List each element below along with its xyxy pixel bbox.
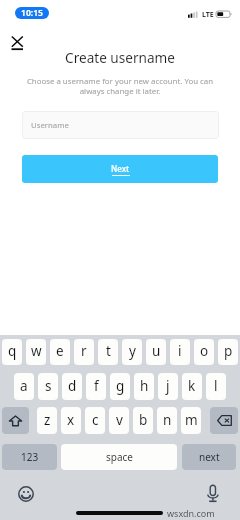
button[interactable]: a [14, 373, 34, 400]
staticText: b [139, 411, 148, 429]
button[interactable]: Dictation [207, 484, 219, 503]
staticText: n [163, 411, 172, 429]
button[interactable]: h [134, 373, 154, 400]
staticText: 123 [21, 450, 39, 464]
staticText: Choose a username for your new account. … [0, 76, 240, 96]
button[interactable]: Username [22, 111, 219, 139]
button[interactable]: t [98, 339, 118, 365]
staticText: i [178, 342, 182, 360]
staticText: o [200, 342, 209, 360]
staticText: u [152, 342, 161, 360]
staticText: k [188, 377, 196, 395]
button[interactable]: j [158, 373, 178, 400]
button[interactable]: next [182, 444, 236, 470]
button[interactable]: Emoji keyboard [18, 486, 34, 502]
staticText: e [56, 342, 64, 360]
button[interactable]: s [38, 373, 58, 400]
staticText: h [140, 377, 149, 395]
button[interactable]: w [26, 339, 46, 365]
button[interactable]: g [110, 373, 130, 400]
button[interactable]: k [182, 373, 202, 400]
button[interactable]: u [146, 339, 166, 365]
button[interactable]: Close [6, 32, 28, 52]
staticText: t [106, 342, 111, 360]
button[interactable]: i [170, 339, 190, 365]
staticText: r [81, 342, 87, 360]
button[interactable]: c [85, 407, 105, 434]
staticText: next [199, 450, 220, 464]
button[interactable]: v [109, 407, 129, 434]
button[interactable]: m [181, 407, 201, 434]
button[interactable]: Backspace [210, 407, 238, 434]
staticText: p [224, 342, 233, 360]
staticText: q [8, 342, 17, 360]
button[interactable]: d [62, 373, 82, 400]
button[interactable]: b [133, 407, 153, 434]
staticText: w [31, 342, 42, 360]
staticText: a [20, 377, 28, 395]
staticText: s [45, 377, 52, 395]
button[interactable]: q [2, 339, 22, 365]
button[interactable]: 123 [2, 444, 57, 470]
button[interactable]: f [86, 373, 106, 400]
staticText: x [67, 411, 75, 429]
staticText: d [68, 377, 77, 395]
button[interactable]: Shift [2, 407, 29, 434]
staticText: m [185, 411, 198, 429]
staticText: g [116, 377, 125, 395]
button[interactable]: o [194, 339, 214, 365]
staticText: f [94, 377, 99, 395]
staticText: Username [31, 120, 69, 131]
staticText: y [129, 342, 136, 360]
button[interactable]: Next [22, 155, 218, 183]
staticText: wsxdn.com [167, 507, 215, 519]
button[interactable]: l [206, 373, 226, 400]
button[interactable]: n [157, 407, 177, 434]
staticText: Next [111, 163, 130, 174]
button[interactable]: r [74, 339, 94, 365]
button[interactable]: space [61, 444, 177, 470]
staticText: 10:15 [21, 7, 44, 19]
staticText: v [116, 411, 123, 429]
staticText: LTE [202, 10, 214, 20]
staticText: z [44, 411, 51, 429]
staticText: c [92, 411, 99, 429]
button[interactable]: x [61, 407, 81, 434]
staticText: space [106, 450, 133, 464]
staticText: j [166, 377, 170, 395]
button[interactable]: y [122, 339, 142, 365]
button[interactable]: p [218, 339, 238, 365]
staticText: l [214, 377, 218, 395]
staticText: Create username [0, 48, 240, 67]
button[interactable]: e [50, 339, 70, 365]
button[interactable]: z [37, 407, 57, 434]
